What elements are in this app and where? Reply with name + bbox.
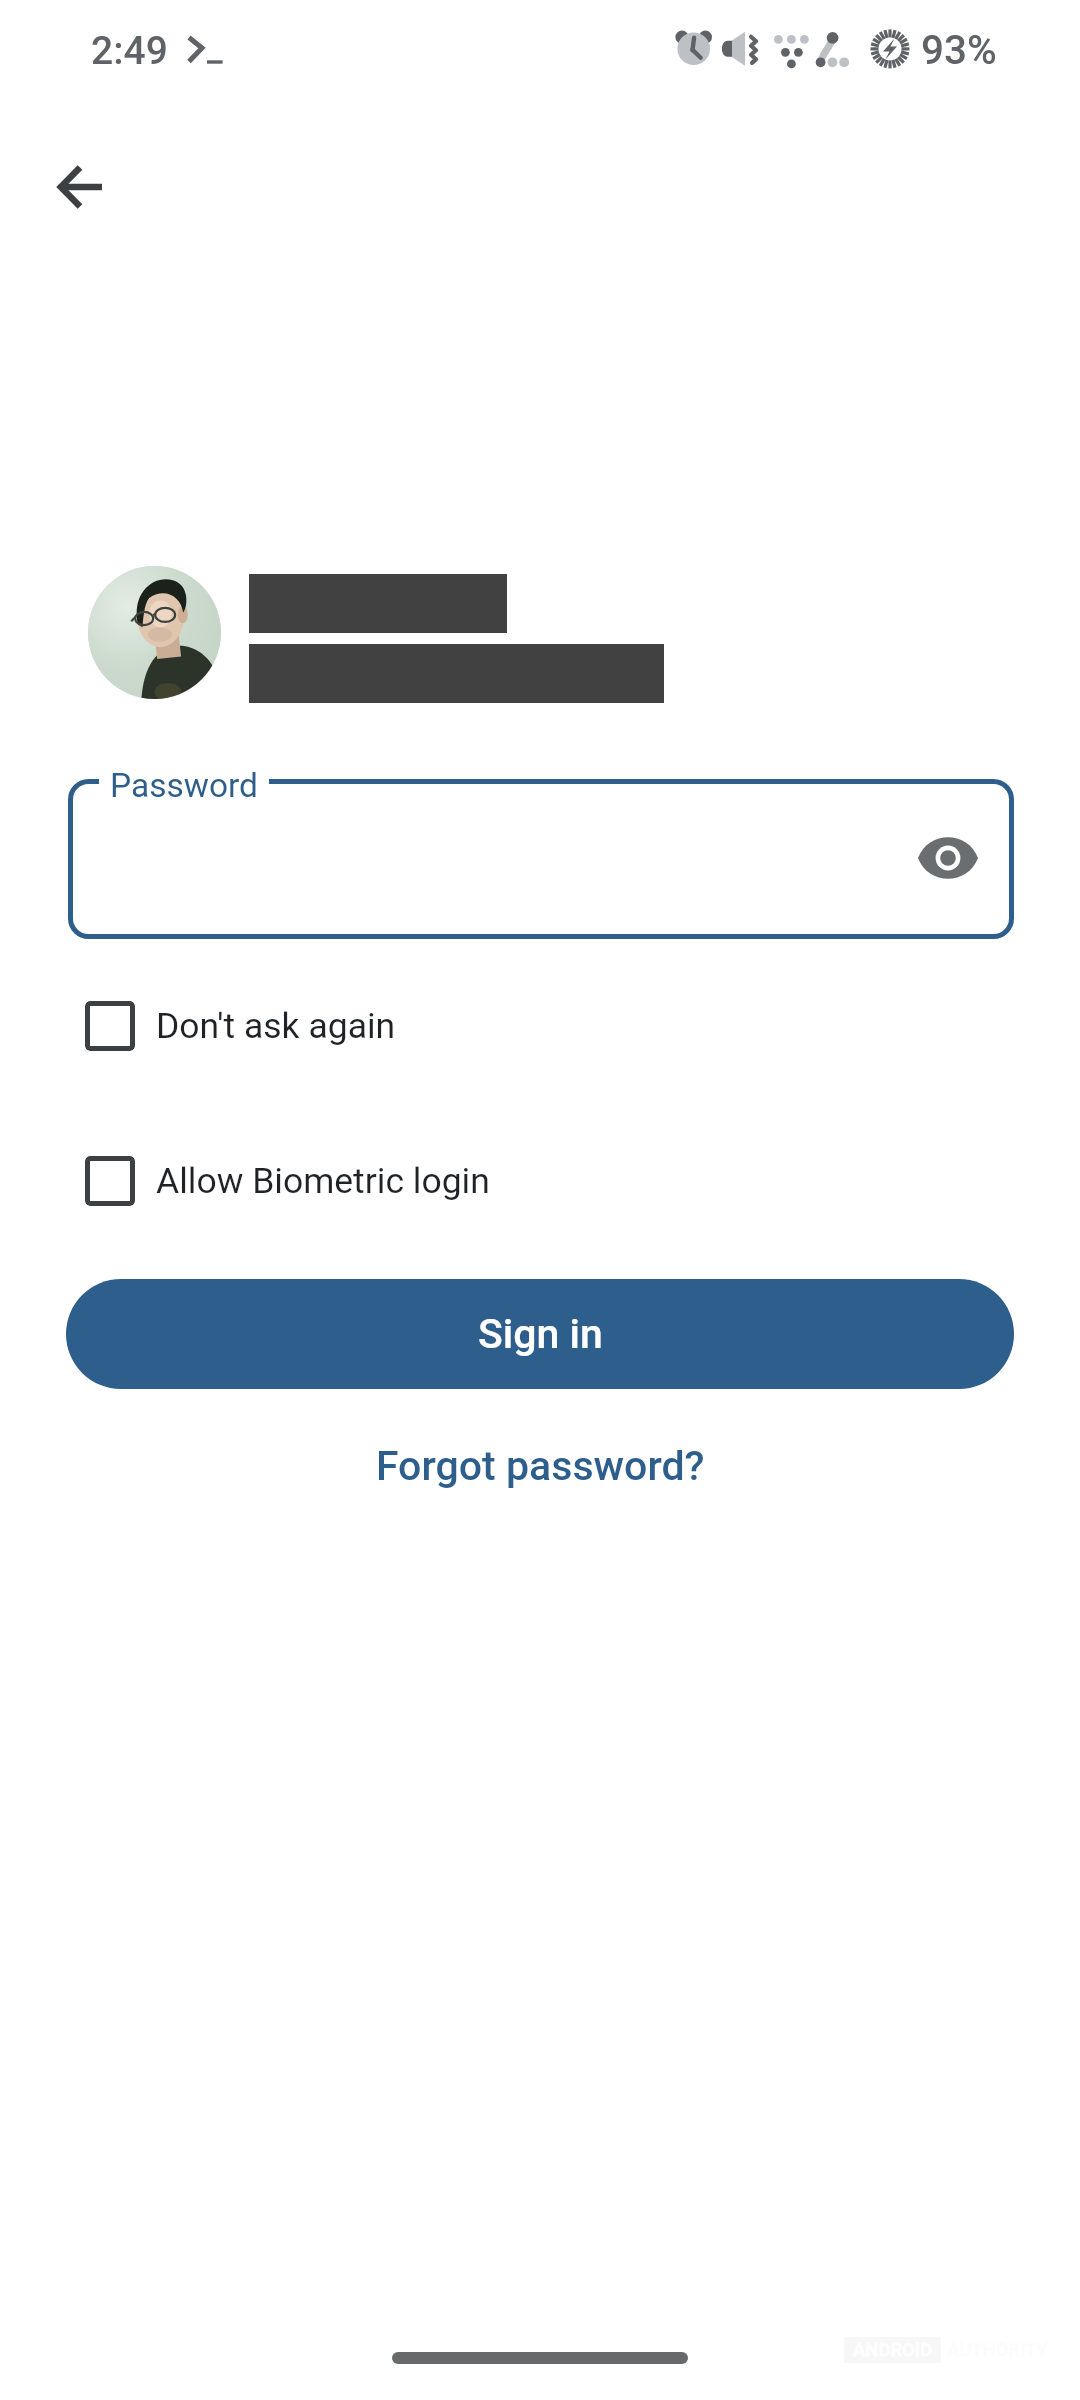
staticText: 93% [921, 26, 997, 73]
staticText: 2:49 [91, 28, 168, 74]
button[interactable]: Sign in [66, 1279, 1014, 1389]
staticText: Don't ask again [156, 1005, 396, 1047]
button[interactable]: Don't ask again [60, 977, 420, 1075]
staticText: Sign in [478, 1310, 603, 1358]
button[interactable]: Show password [902, 812, 994, 904]
staticText: Forgot password? [376, 1442, 705, 1490]
button[interactable]: Forgot password? [320, 1421, 760, 1511]
staticText: Allow Biometric login [156, 1160, 490, 1202]
button[interactable]: Allow Biometric login [60, 1132, 510, 1230]
button[interactable]: Back [32, 139, 128, 235]
staticText: Password [110, 766, 258, 805]
